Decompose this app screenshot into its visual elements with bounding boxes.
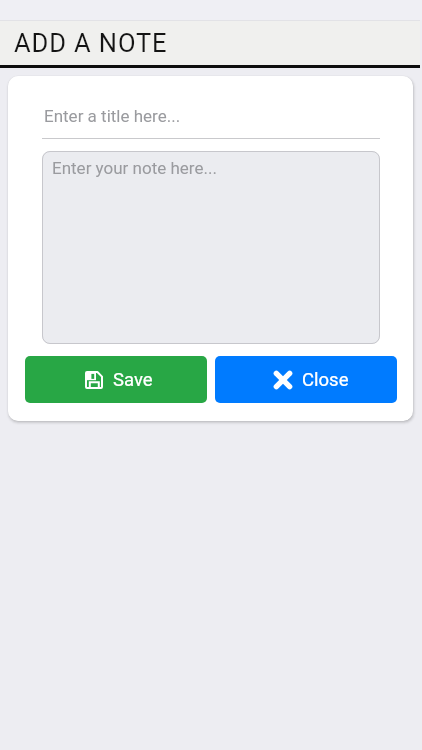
button[interactable]: Save <box>25 356 207 403</box>
staticText: ADD A NOTE <box>14 28 168 58</box>
button[interactable]: Enter a title here... <box>42 106 380 138</box>
staticText: Enter a title here... <box>44 106 181 126</box>
button[interactable]: Enter your note here... <box>42 151 380 344</box>
staticText: Save <box>113 369 153 391</box>
staticText: Enter your note here... <box>52 158 217 178</box>
button[interactable]: Close <box>215 356 397 403</box>
staticText: Close <box>302 369 349 391</box>
